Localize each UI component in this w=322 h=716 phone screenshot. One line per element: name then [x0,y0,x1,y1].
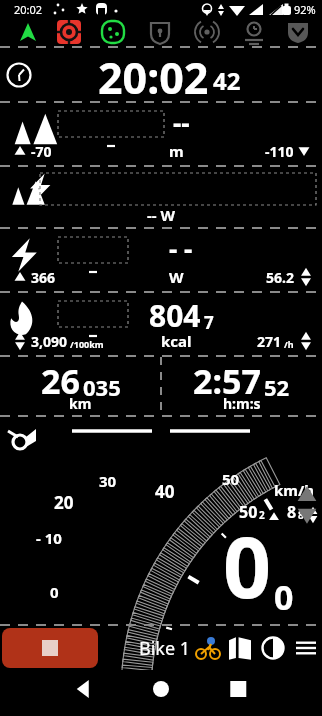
staticText: /100km [70,338,104,350]
staticText: 035 [83,372,121,402]
staticText: 26 [41,358,80,404]
staticText: 2 [259,508,265,522]
staticText: 0 [50,582,59,602]
staticText: 0 [223,508,272,622]
staticText: h:m:s [223,394,261,413]
staticText: km [69,394,92,413]
staticText: 50 [222,469,240,489]
staticText: 50 [239,501,258,523]
button[interactable]: Stop [2,628,98,668]
staticText: m [169,141,184,161]
staticText: -110 [265,142,294,161]
staticText: km/h [274,480,314,500]
staticText: 804 [149,295,201,336]
button[interactable]: 2:57 [161,357,322,415]
staticText: 92% [294,2,316,17]
button[interactable]: -- W [0,167,322,227]
staticText: 366 [31,268,56,287]
staticText: 20:02 [98,48,209,101]
staticText: 30 [99,471,117,491]
button[interactable]: Cyclist [195,635,221,661]
staticText: -- W [147,205,176,225]
button[interactable]: -- [0,103,322,165]
staticText: 56.2 [266,268,294,287]
staticText: kcal [161,331,192,351]
button[interactable]: 26 [0,357,161,415]
staticText: 8 [287,501,297,523]
button[interactable]: Bike 1 [139,636,191,661]
button[interactable]: Map [228,636,252,660]
button[interactable]: - - [0,229,322,291]
button[interactable]: Contrast [261,636,285,660]
staticText: - 10 [36,528,62,548]
staticText: 40 [155,480,175,503]
staticText: 20 [54,491,74,514]
staticText: /h [284,338,294,350]
button[interactable]: Menu [294,636,318,660]
button[interactable]: 804 [0,293,322,355]
staticText: 0 [274,574,294,620]
staticText: -70 [31,142,52,161]
staticText: 3,090 [31,332,68,351]
staticText: -- [173,105,190,140]
staticText: W [169,267,184,287]
staticText: 20:02 [14,2,43,17]
staticText: 271 [257,332,282,351]
button[interactable]: 20:02 [0,48,322,101]
staticText: 2:57 [193,358,261,404]
staticText: 8 [298,508,304,522]
staticText: 7 [204,311,214,334]
staticText: Bike 1 [139,636,191,661]
staticText: 42 [213,64,241,97]
staticText: - - [169,231,193,266]
staticText: 52 [264,372,290,402]
button[interactable]: 20 [0,417,322,624]
